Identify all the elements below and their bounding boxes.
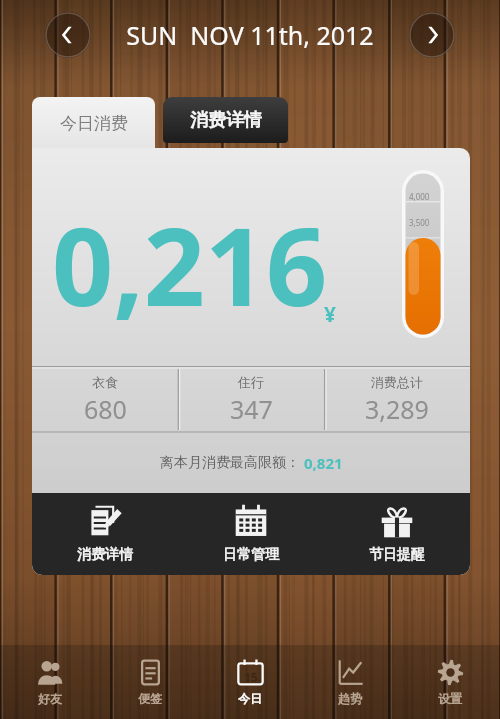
staticText: 今日消费 <box>60 113 128 134</box>
staticText: 680 <box>84 392 127 426</box>
button[interactable]: 好友 <box>0 645 100 719</box>
button[interactable]: 日常管理 <box>178 493 324 575</box>
staticText: ¥ <box>324 300 337 329</box>
button[interactable]: Previous day <box>45 12 91 58</box>
staticText: 347 <box>230 392 273 426</box>
button[interactable]: 消费详情 <box>163 97 288 143</box>
staticText: 消费详情 <box>190 109 262 132</box>
button[interactable]: 今日消费 <box>32 97 155 150</box>
staticText: SUN NOV 11th, 2012 <box>126 18 374 52</box>
button[interactable]: 消费总计 <box>324 366 470 433</box>
staticText: 离本月消费最高限额： <box>160 454 300 472</box>
staticText: 今日 <box>238 691 262 706</box>
staticText: 0,216 <box>52 192 328 338</box>
staticText: 便签 <box>138 691 162 706</box>
staticText: 衣食 <box>92 374 118 390</box>
staticText: 节日提醒 <box>369 546 425 564</box>
staticText: 住行 <box>238 374 264 390</box>
staticText: 0,821 <box>304 453 343 473</box>
staticText: 设置 <box>438 691 462 706</box>
button[interactable]: 趋势 <box>300 645 400 719</box>
staticText: 消费详情 <box>77 546 133 564</box>
button[interactable]: 消费详情 <box>32 493 178 575</box>
button[interactable]: 衣食 <box>32 366 178 433</box>
staticText: 15 <box>244 669 258 685</box>
button[interactable]: 今日 <box>200 645 300 719</box>
staticText: 消费总计 <box>371 374 423 390</box>
button[interactable]: Next day <box>409 12 455 58</box>
staticText: 4,000 <box>409 191 430 202</box>
button[interactable]: 设置 <box>400 645 500 719</box>
button[interactable]: 住行 <box>178 366 324 433</box>
staticText: 3,500 <box>409 217 430 228</box>
staticText: 3,289 <box>365 392 429 426</box>
button[interactable]: 便签 <box>100 645 200 719</box>
staticText: 趋势 <box>338 691 362 706</box>
button[interactable]: 节日提醒 <box>324 493 470 575</box>
staticText: 好友 <box>38 691 62 706</box>
staticText: 日常管理 <box>223 546 279 564</box>
